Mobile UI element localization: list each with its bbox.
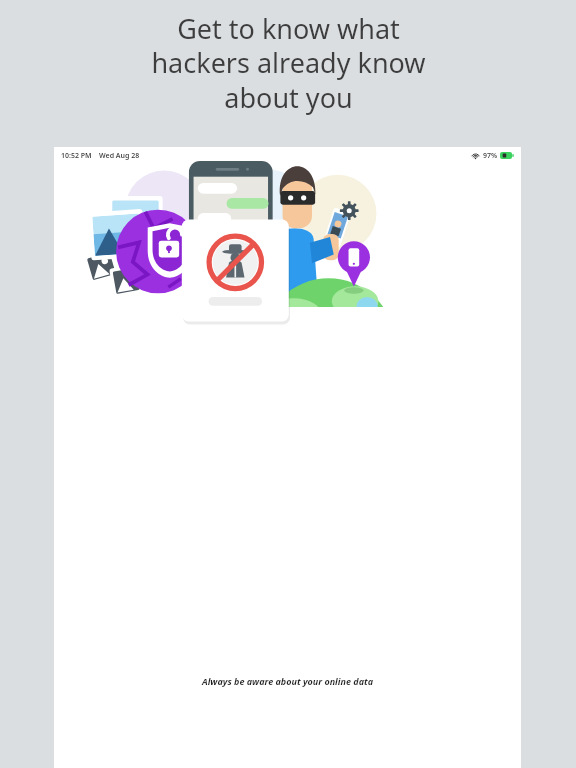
staticText: Wed Aug 28 bbox=[99, 151, 140, 161]
staticText: 97% bbox=[483, 151, 498, 161]
staticText: Get to know what hackers already know ab… bbox=[151, 10, 426, 116]
staticText: Always be aware about your online data bbox=[202, 675, 373, 687]
staticText: 10:52 PM bbox=[61, 151, 92, 161]
